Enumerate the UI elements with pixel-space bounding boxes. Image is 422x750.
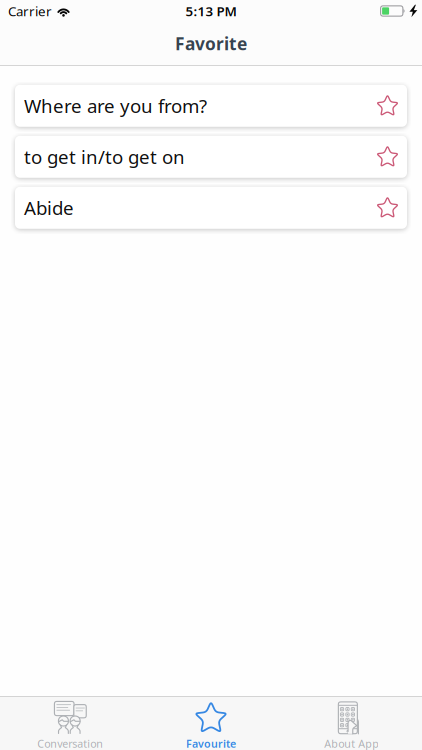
staticText: Carrier [8,2,52,20]
staticText: Conversation [37,736,103,750]
button[interactable]: Where are you from? [15,85,407,127]
staticText: Where are you from? [24,93,207,118]
staticText: Favorite [175,32,247,55]
button[interactable]: to get in/to get on [15,136,407,178]
button[interactable]: Favourite [141,697,281,750]
staticText: 5:13 PM [185,2,236,20]
button[interactable]: About App [281,697,422,750]
staticText: Abide [24,195,74,220]
button[interactable]: Conversation [0,697,141,750]
staticText: About App [324,736,379,750]
button[interactable]: Abide [15,187,407,229]
staticText: to get in/to get on [24,144,185,169]
staticText: Favourite [186,736,236,750]
